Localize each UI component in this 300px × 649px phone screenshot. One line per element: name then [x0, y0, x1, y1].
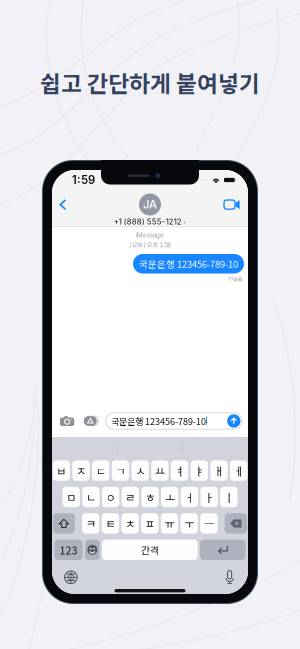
staticText: ㅔ — [234, 462, 244, 479]
button[interactable]: ㅐ — [210, 460, 228, 481]
staticText: ㅊ — [125, 515, 135, 532]
button[interactable]: ㅑ — [190, 460, 208, 481]
staticText: ㅛ — [155, 462, 165, 479]
staticText: ㅇ — [106, 489, 116, 505]
staticText: ㅅ — [135, 462, 145, 479]
staticText: ㅎ — [145, 489, 155, 505]
staticText: ㅑ — [194, 462, 204, 479]
button[interactable]: ㅛ — [151, 460, 168, 481]
staticText: ㄱ — [115, 462, 125, 479]
staticText: › — [183, 217, 186, 226]
staticText: ㅈ — [76, 462, 86, 479]
button[interactable]: ㄷ — [92, 460, 109, 481]
staticText: 123 — [59, 542, 77, 557]
button[interactable]: Return — [200, 540, 246, 560]
staticText: ㅋ — [86, 515, 96, 532]
staticText: ㅐ — [214, 462, 224, 479]
button[interactable]: App Store — [81, 413, 101, 429]
button[interactable]: ㅏ — [200, 487, 218, 507]
button[interactable]: ㅅ — [131, 460, 149, 481]
staticText: 전송됨 — [228, 275, 243, 283]
button[interactable]: ㅕ — [171, 460, 188, 481]
button[interactable]: ㄱ — [112, 460, 129, 481]
staticText: ㅜ — [184, 515, 194, 532]
button[interactable]: ㅣ — [220, 487, 237, 507]
button[interactable]: ㅗ — [161, 487, 178, 507]
button[interactable]: Dictation — [226, 571, 234, 584]
staticText: JA — [143, 198, 157, 211]
button[interactable]: Switch keyboard — [65, 571, 77, 584]
button[interactable]: ㅌ — [102, 513, 119, 534]
button[interactable]: ㅊ — [121, 513, 139, 534]
button[interactable]: Emoji — [85, 540, 100, 560]
button[interactable]: FaceTime video call — [218, 191, 246, 218]
button[interactable]: ㅓ — [181, 487, 198, 507]
staticText: 쉽고 간단하게 붙여넣기 — [40, 66, 260, 99]
staticText: ㅌ — [105, 515, 115, 532]
staticText: ㅂ — [56, 462, 66, 479]
staticText: 국문은행 123456-789-10 — [111, 414, 206, 427]
button[interactable]: 123 — [54, 540, 83, 560]
button[interactable]: Delete — [225, 513, 247, 534]
staticText: ㅁ — [66, 489, 76, 505]
button[interactable]: ㅇ — [102, 487, 119, 507]
staticText: ㅠ — [164, 515, 174, 532]
staticText: ㅡ — [204, 515, 214, 532]
staticText: 1:59 — [72, 173, 95, 187]
button[interactable]: ㅈ — [72, 460, 90, 481]
staticText: ㅍ — [145, 515, 155, 532]
button[interactable]: ㅁ — [62, 487, 80, 507]
staticText: (오늘) 오후 1:58 — [129, 240, 170, 249]
staticText: ㅣ — [224, 489, 234, 505]
button[interactable]: ㅠ — [161, 513, 178, 534]
button[interactable]: ㅋ — [82, 513, 99, 534]
button[interactable]: Camera — [57, 413, 77, 429]
button[interactable]: ㄴ — [82, 487, 100, 507]
button[interactable]: ㄹ — [122, 487, 139, 507]
button[interactable]: ㅍ — [141, 513, 158, 534]
staticText: ㄹ — [125, 489, 135, 505]
button[interactable]: ㅡ — [200, 513, 218, 534]
staticText: ㅏ — [204, 489, 214, 505]
staticText: ㅕ — [174, 462, 184, 479]
staticText: ㄴ — [86, 489, 96, 505]
staticText: 간격 — [141, 543, 159, 557]
staticText: ㄷ — [96, 462, 106, 479]
staticText: +1 (888) 555-1212 — [114, 217, 182, 226]
button[interactable]: Shift — [53, 513, 75, 534]
button[interactable]: ㅂ — [53, 460, 70, 481]
button[interactable]: ㅜ — [180, 513, 198, 534]
staticText: ㅗ — [165, 489, 175, 505]
button[interactable]: ㅎ — [141, 487, 159, 507]
button[interactable]: Send — [227, 414, 240, 428]
button[interactable]: ㅔ — [230, 460, 247, 481]
staticText: ㅓ — [184, 489, 194, 505]
button[interactable]: Back — [54, 191, 72, 218]
staticText: 국문은행 123456-789-10 — [139, 257, 238, 270]
staticText: iMessage — [136, 231, 164, 239]
button[interactable]: 간격 — [102, 540, 198, 560]
